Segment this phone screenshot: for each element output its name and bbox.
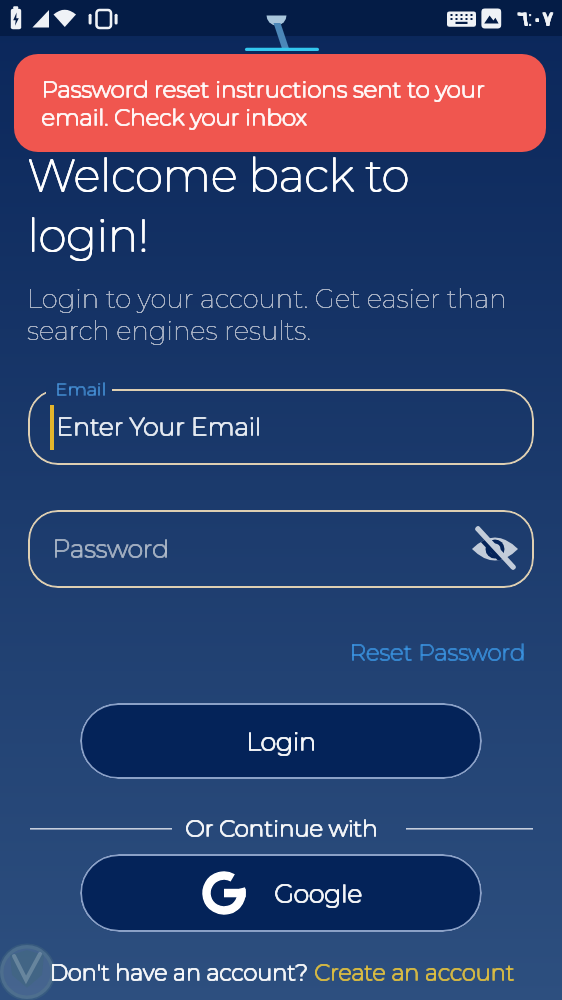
staticText: Welcome back to login!: [27, 148, 409, 264]
staticText: Google: [275, 879, 363, 909]
staticText: Login to your account. Get easier than s…: [27, 283, 507, 347]
staticText: Or Continue with: [186, 814, 379, 842]
staticText: Reset Password: [349, 638, 525, 666]
button[interactable]: Login: [80, 703, 482, 779]
staticText: Create an account: [315, 959, 515, 986]
staticText: Don't have an account?: [49, 958, 314, 985]
staticText: ٦:٠٧: [517, 7, 553, 31]
staticText: ٦:٠٧: [518, 7, 554, 31]
staticText: Create an account: [314, 959, 514, 986]
staticText: Enter Your Email: [57, 412, 262, 442]
button[interactable]: [471, 525, 519, 573]
staticText: Password reset instructions sent to your…: [42, 75, 486, 131]
staticText: Create an account: [315, 958, 515, 985]
staticText: Google: [274, 878, 362, 908]
button[interactable]: Enter Your Email: [28, 389, 534, 465]
button[interactable]: Password: [28, 510, 534, 588]
staticText: Password reset instructions sent to your…: [42, 76, 486, 132]
staticText: Login: [246, 726, 316, 756]
staticText: Password reset instructions sent to your…: [41, 75, 485, 131]
staticText: ٦:٠٧: [518, 6, 554, 30]
button[interactable]: Create an account: [314, 958, 514, 985]
staticText: Welcome back to login!: [28, 148, 410, 264]
staticText: Login: [246, 727, 316, 757]
staticText: Login to your account. Get easier than s…: [27, 283, 507, 347]
staticText: Login: [247, 726, 317, 756]
staticText: Don't have an account?: [50, 958, 315, 985]
staticText: Email: [55, 379, 106, 401]
staticText: Password: [52, 534, 169, 564]
staticText: Reset Password: [350, 638, 526, 666]
staticText: Enter Your Email: [56, 411, 261, 441]
staticText: Password: [52, 533, 169, 563]
staticText: Or Continue with: [186, 815, 379, 843]
staticText: Email: [56, 379, 107, 401]
button[interactable]: Google: [80, 854, 482, 932]
staticText: Password reset instructions sent to your…: [41, 76, 485, 132]
staticText: Don't have an account?: [50, 959, 315, 986]
staticText: Google: [275, 878, 363, 908]
staticText: Email: [56, 378, 107, 400]
staticText: Welcome back to login!: [27, 147, 409, 263]
staticText: Password: [53, 533, 170, 563]
staticText: Enter Your Email: [56, 412, 261, 442]
staticText: Login: [247, 727, 317, 757]
staticText: Or Continue with: [185, 815, 378, 843]
button[interactable]: Reset Password: [349, 638, 525, 666]
staticText: Or Continue with: [185, 814, 378, 842]
staticText: Don't have an account?: [49, 959, 314, 986]
staticText: Create an account: [314, 958, 514, 985]
staticText: Login to your account. Get easier than s…: [27, 283, 507, 347]
staticText: Welcome back to login!: [28, 147, 410, 263]
staticText: Reset Password: [350, 639, 526, 667]
staticText: Login to your account. Get easier than s…: [27, 283, 507, 347]
staticText: ٦:٠٧: [517, 6, 553, 30]
staticText: Enter Your Email: [57, 411, 262, 441]
staticText: Google: [274, 879, 362, 909]
staticText: Email: [55, 378, 106, 400]
staticText: Reset Password: [349, 639, 525, 667]
staticText: Password: [53, 534, 170, 564]
